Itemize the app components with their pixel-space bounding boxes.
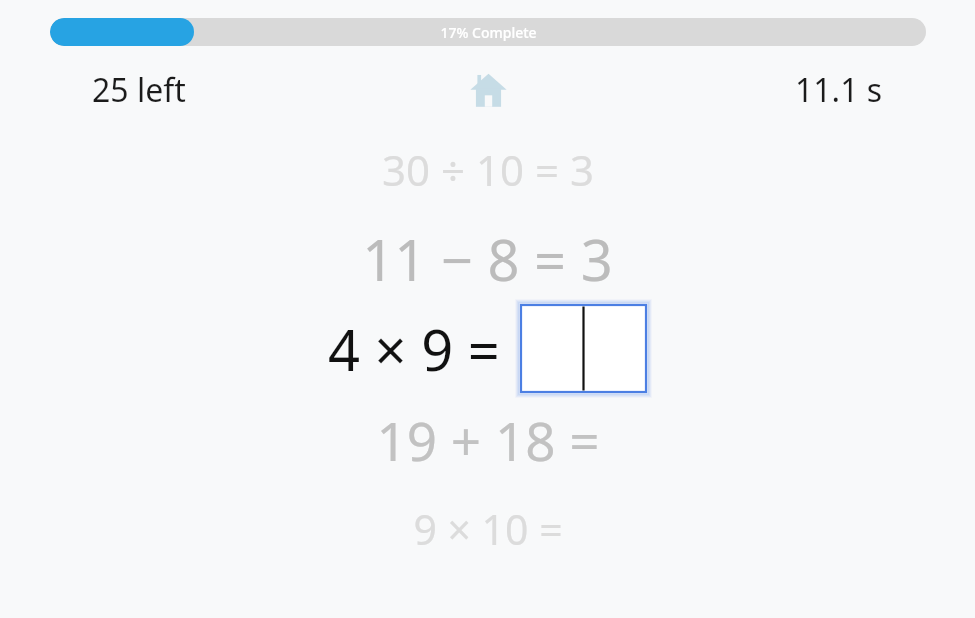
staticText: 30 ÷ 10 = 3 [382, 141, 594, 198]
staticText: 11.1 s [795, 68, 883, 112]
staticText: 4 × 9 = [328, 311, 500, 387]
staticText: 19 + 18 = [376, 404, 600, 476]
button[interactable]: 4 × 9 = [328, 304, 647, 393]
button[interactable]: Home [466, 68, 510, 112]
staticText: 17% Complete [440, 23, 537, 42]
staticText: 9 × 10 = [413, 501, 563, 557]
staticText: 11 − 8 = 3 [362, 221, 613, 297]
button[interactable]: 11 − 8 = 3 [0, 219, 975, 299]
button[interactable]: 17% Complete [50, 18, 926, 46]
staticText: 25 left [92, 68, 186, 112]
button[interactable]: 30 ÷ 10 = 3 [0, 129, 975, 209]
button[interactable]: 9 × 10 = [0, 489, 975, 569]
button[interactable]: Answer input [520, 304, 647, 393]
button[interactable]: 19 + 18 = [0, 400, 975, 480]
